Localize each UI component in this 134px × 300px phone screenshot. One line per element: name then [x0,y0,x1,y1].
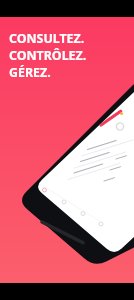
staticText: CONSULTEZ. [9,30,85,47]
staticText: GÉREZ. [9,64,51,81]
staticText: CONTRÔLEZ. [9,47,87,64]
